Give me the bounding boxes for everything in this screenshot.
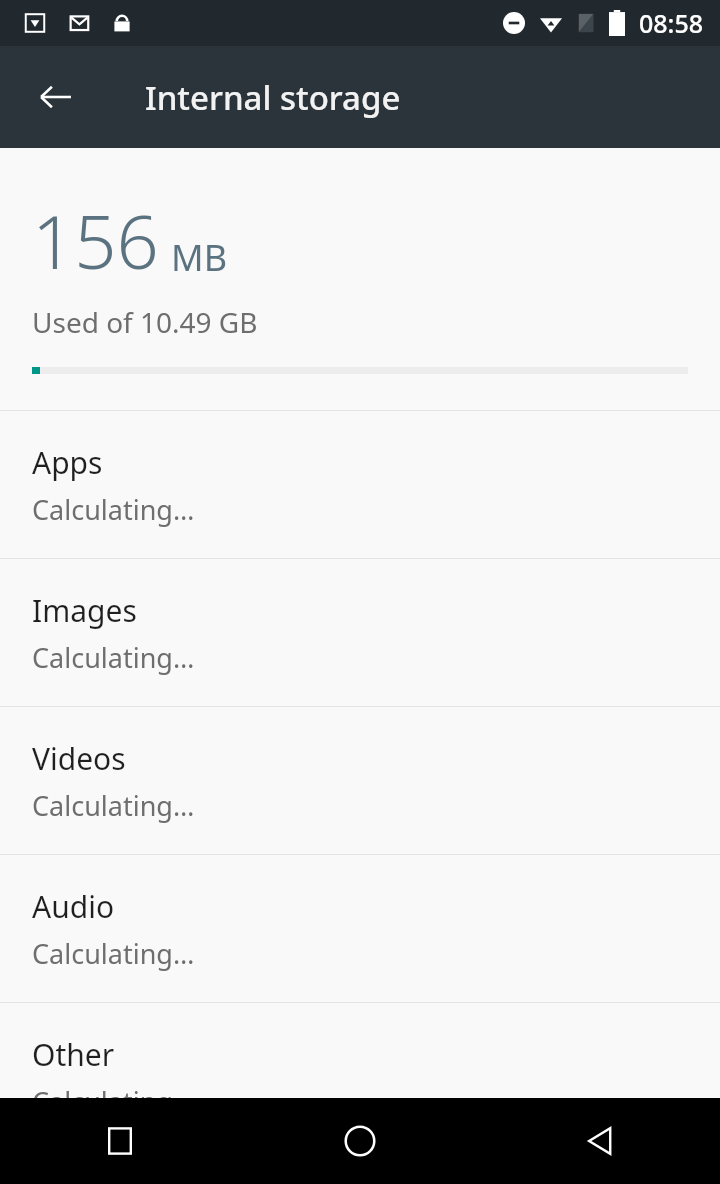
staticText: Internal storage <box>145 75 401 120</box>
staticText: Images <box>32 590 137 631</box>
staticText: 08:58 <box>639 6 704 40</box>
staticText: Calculating… <box>32 491 195 528</box>
button[interactable]: Apps <box>0 411 720 559</box>
staticText: 156 <box>32 190 159 291</box>
staticText: Calculating… <box>32 1083 195 1120</box>
button[interactable]: Back <box>22 63 90 131</box>
staticText: Calculating… <box>32 935 195 972</box>
staticText: Other <box>32 1034 115 1075</box>
staticText: Used of 10.49 GB <box>32 303 258 341</box>
button[interactable]: Recents <box>0 1098 240 1184</box>
staticText: MB <box>171 233 228 282</box>
staticText: Videos <box>32 738 126 779</box>
button[interactable]: Audio <box>0 855 720 1003</box>
button[interactable]: Videos <box>0 707 720 855</box>
button[interactable]: Home <box>240 1098 480 1184</box>
staticText: Calculating… <box>32 639 195 676</box>
staticText: Calculating… <box>32 787 195 824</box>
staticText: Apps <box>32 442 103 483</box>
button[interactable]: Other <box>0 1003 720 1151</box>
staticText: Audio <box>32 886 115 927</box>
button[interactable]: Back <box>480 1098 720 1184</box>
button[interactable]: Images <box>0 559 720 707</box>
